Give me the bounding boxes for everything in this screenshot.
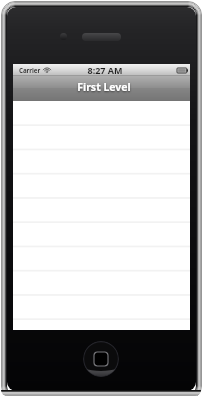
button[interactable] xyxy=(13,293,190,317)
staticText: 8:27 AM xyxy=(87,64,123,76)
button[interactable] xyxy=(13,317,190,330)
staticText: First Level xyxy=(77,80,131,94)
staticText: Carrier xyxy=(19,66,41,74)
button[interactable] xyxy=(13,197,190,221)
button[interactable] xyxy=(13,221,190,245)
button[interactable]: Home button xyxy=(83,341,119,377)
